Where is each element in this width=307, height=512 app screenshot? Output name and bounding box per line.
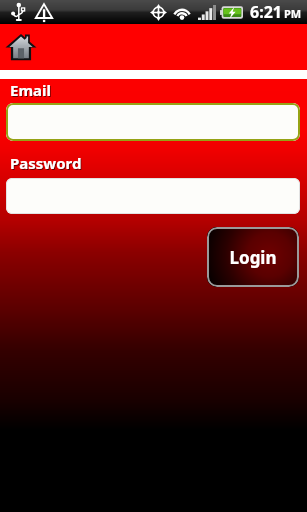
button[interactable] <box>6 103 300 141</box>
staticText: Password <box>10 153 82 173</box>
button[interactable]: Home <box>5 33 37 61</box>
staticText: Email <box>11 81 52 101</box>
staticText: Password <box>11 154 83 174</box>
staticText: PM <box>284 6 302 21</box>
staticText: 6:21 <box>250 1 282 23</box>
staticText: Login <box>229 246 277 269</box>
button[interactable]: Login <box>207 227 299 287</box>
staticText: Email <box>10 80 51 100</box>
button[interactable] <box>6 178 300 214</box>
